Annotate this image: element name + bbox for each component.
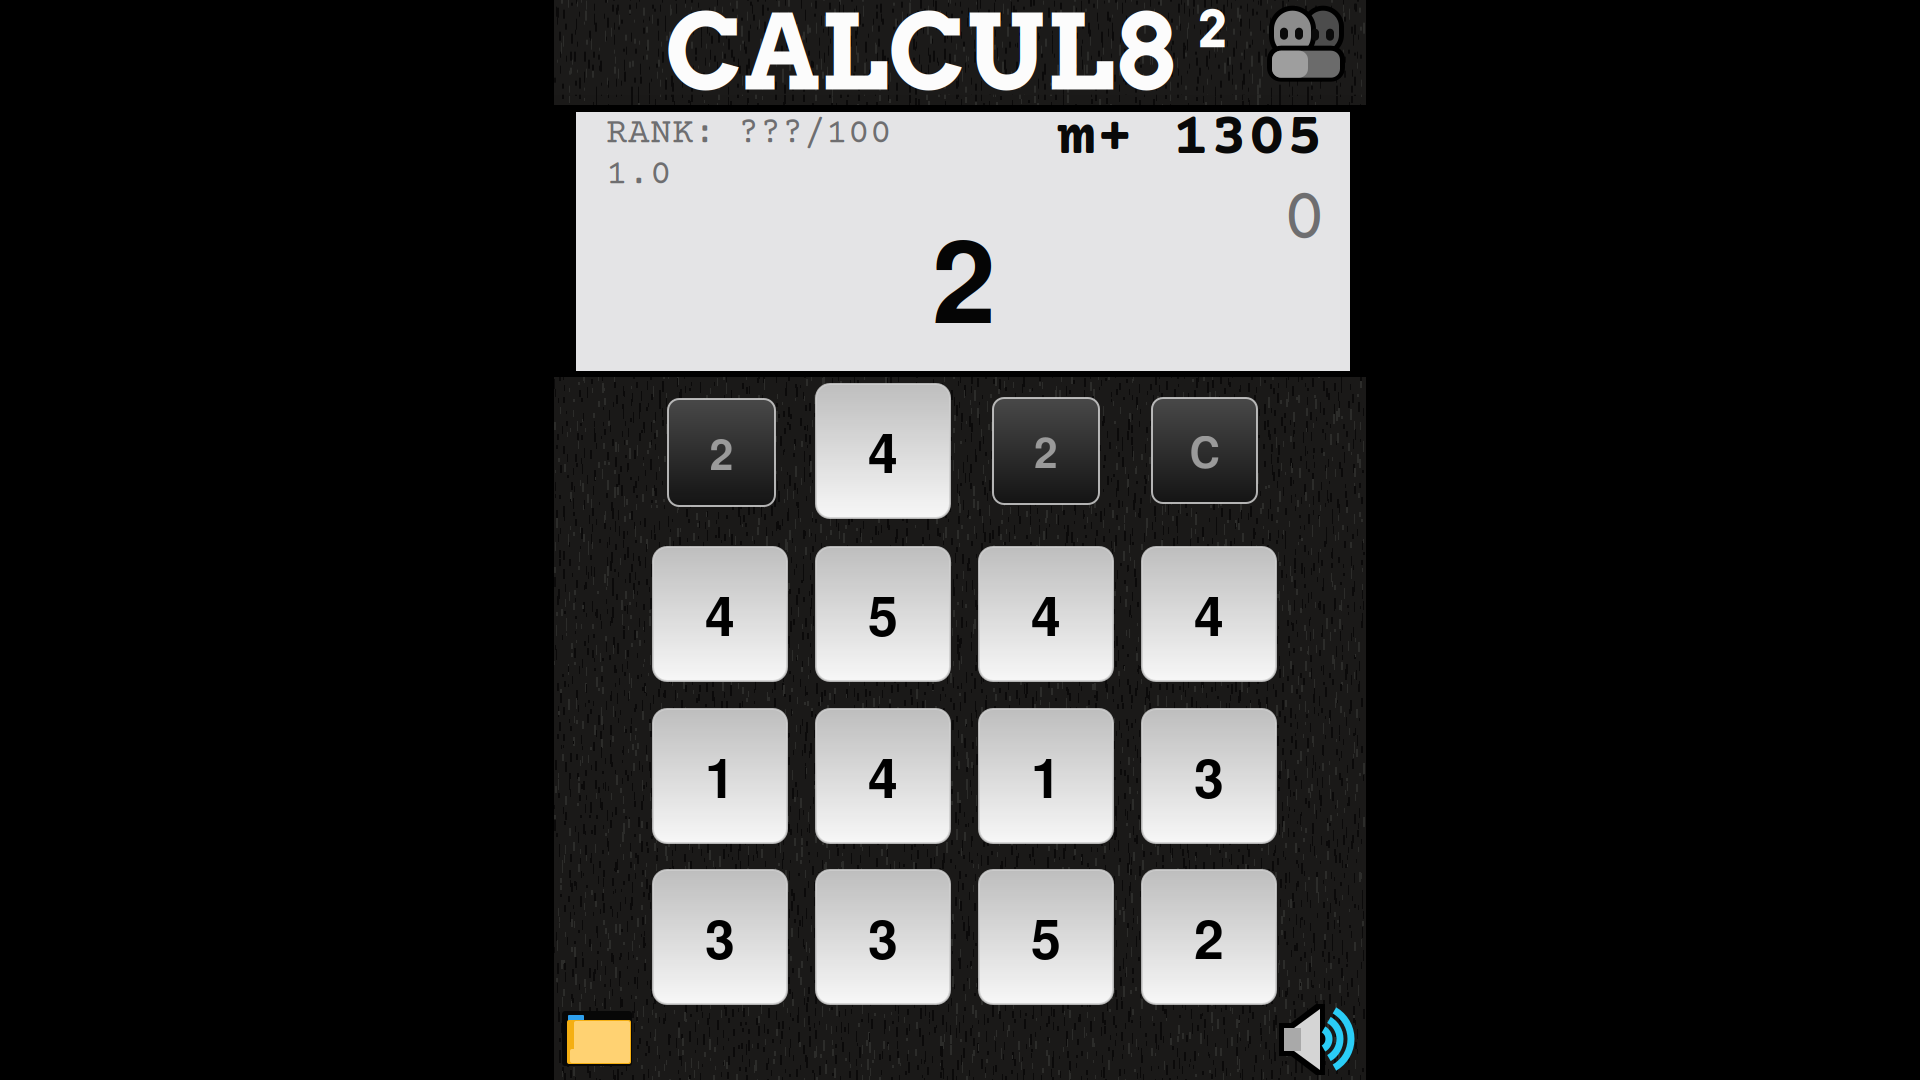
staticText: 2 <box>1194 899 1224 975</box>
staticText: CALCUL8 <box>665 0 1174 115</box>
button[interactable]: 1 <box>653 709 787 843</box>
button[interactable]: 4 <box>979 547 1113 681</box>
button[interactable]: C <box>1152 398 1257 503</box>
staticText: 3 <box>1194 738 1224 814</box>
staticText: 2 <box>709 422 733 483</box>
staticText: 2 <box>1034 421 1058 481</box>
staticText: 4 <box>705 576 735 652</box>
staticText: 1 <box>705 738 735 814</box>
staticText: RANK: ???/100 <box>606 114 892 154</box>
staticText: 5 <box>868 576 898 652</box>
button[interactable]: 4 <box>816 384 950 518</box>
staticText: 0 <box>1282 179 1327 263</box>
staticText: 2 <box>1197 0 1226 60</box>
button[interactable]: 1 <box>979 709 1113 843</box>
button[interactable]: 3 <box>1142 709 1276 843</box>
button[interactable]: 2 <box>993 398 1099 504</box>
button[interactable]: 5 <box>816 547 950 681</box>
staticText: 2 <box>932 194 996 358</box>
staticText: 4 <box>868 738 898 814</box>
staticText: 3 <box>868 899 898 975</box>
staticText: 4 <box>1031 576 1061 652</box>
staticText: 1 <box>1031 738 1061 814</box>
button[interactable]: 4 <box>816 709 950 843</box>
button[interactable]: Saved games <box>562 1011 632 1066</box>
button[interactable]: 2 <box>1142 870 1276 1004</box>
button[interactable]: 3 <box>816 870 950 1004</box>
button[interactable]: 3 <box>653 870 787 1004</box>
staticText: 5 <box>1031 899 1061 975</box>
button[interactable]: 5 <box>979 870 1113 1004</box>
staticText: C <box>1189 420 1219 480</box>
button[interactable]: Sound <box>1279 1004 1357 1076</box>
staticText: 4 <box>1194 576 1224 652</box>
staticText: 4 <box>868 413 898 489</box>
button[interactable]: 4 <box>1142 547 1276 681</box>
staticText: 3 <box>705 899 735 975</box>
staticText: 1.0 <box>606 155 672 195</box>
button[interactable]: 2 <box>668 399 775 506</box>
button[interactable]: Multiplayer <box>1267 6 1345 82</box>
staticText: m+ 1305 <box>1058 104 1324 174</box>
button[interactable]: 4 <box>653 547 787 681</box>
